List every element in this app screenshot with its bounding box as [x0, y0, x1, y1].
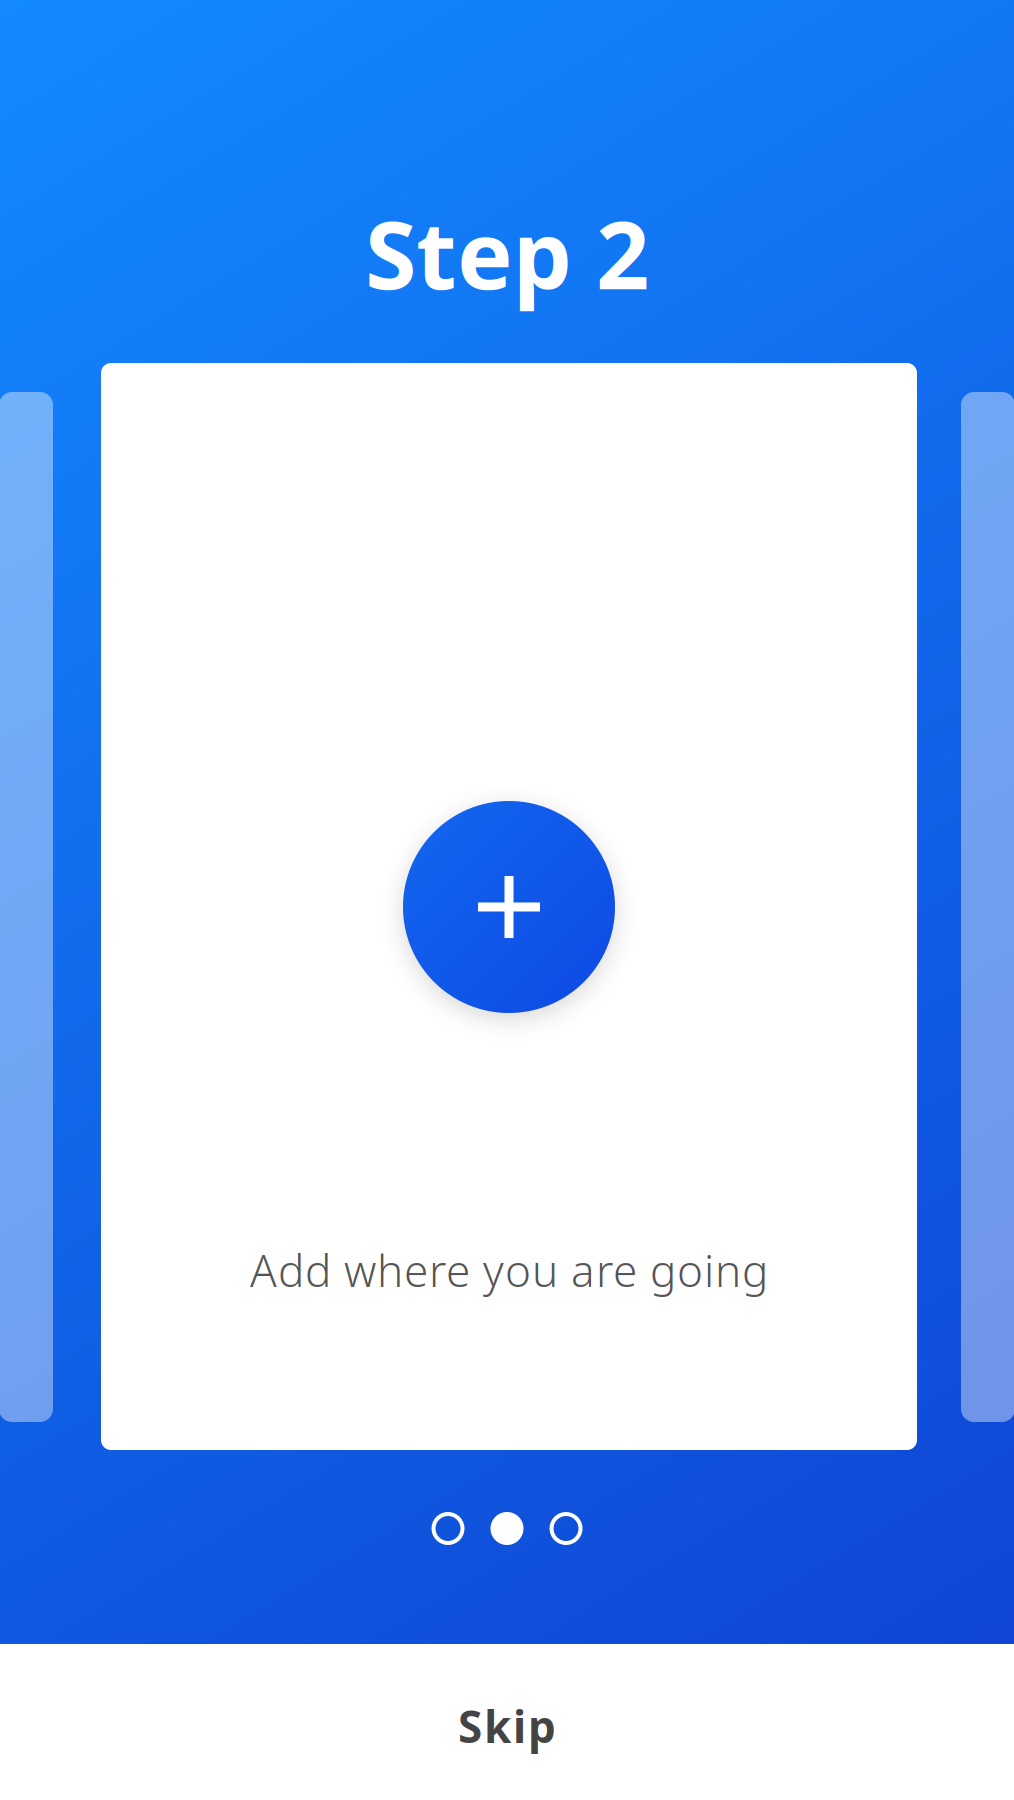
button[interactable]: Skip [0, 1644, 1014, 1800]
button[interactable]: Page 2, current page [490, 1512, 523, 1545]
button[interactable]: Page 1 [431, 1512, 464, 1545]
staticText: Add where you are going [250, 1241, 768, 1299]
button[interactable]: Page 3 [549, 1512, 582, 1545]
button[interactable]: Add destination [403, 801, 615, 1013]
staticText: Skip [458, 1697, 556, 1755]
staticText: Step 2 [365, 191, 649, 315]
